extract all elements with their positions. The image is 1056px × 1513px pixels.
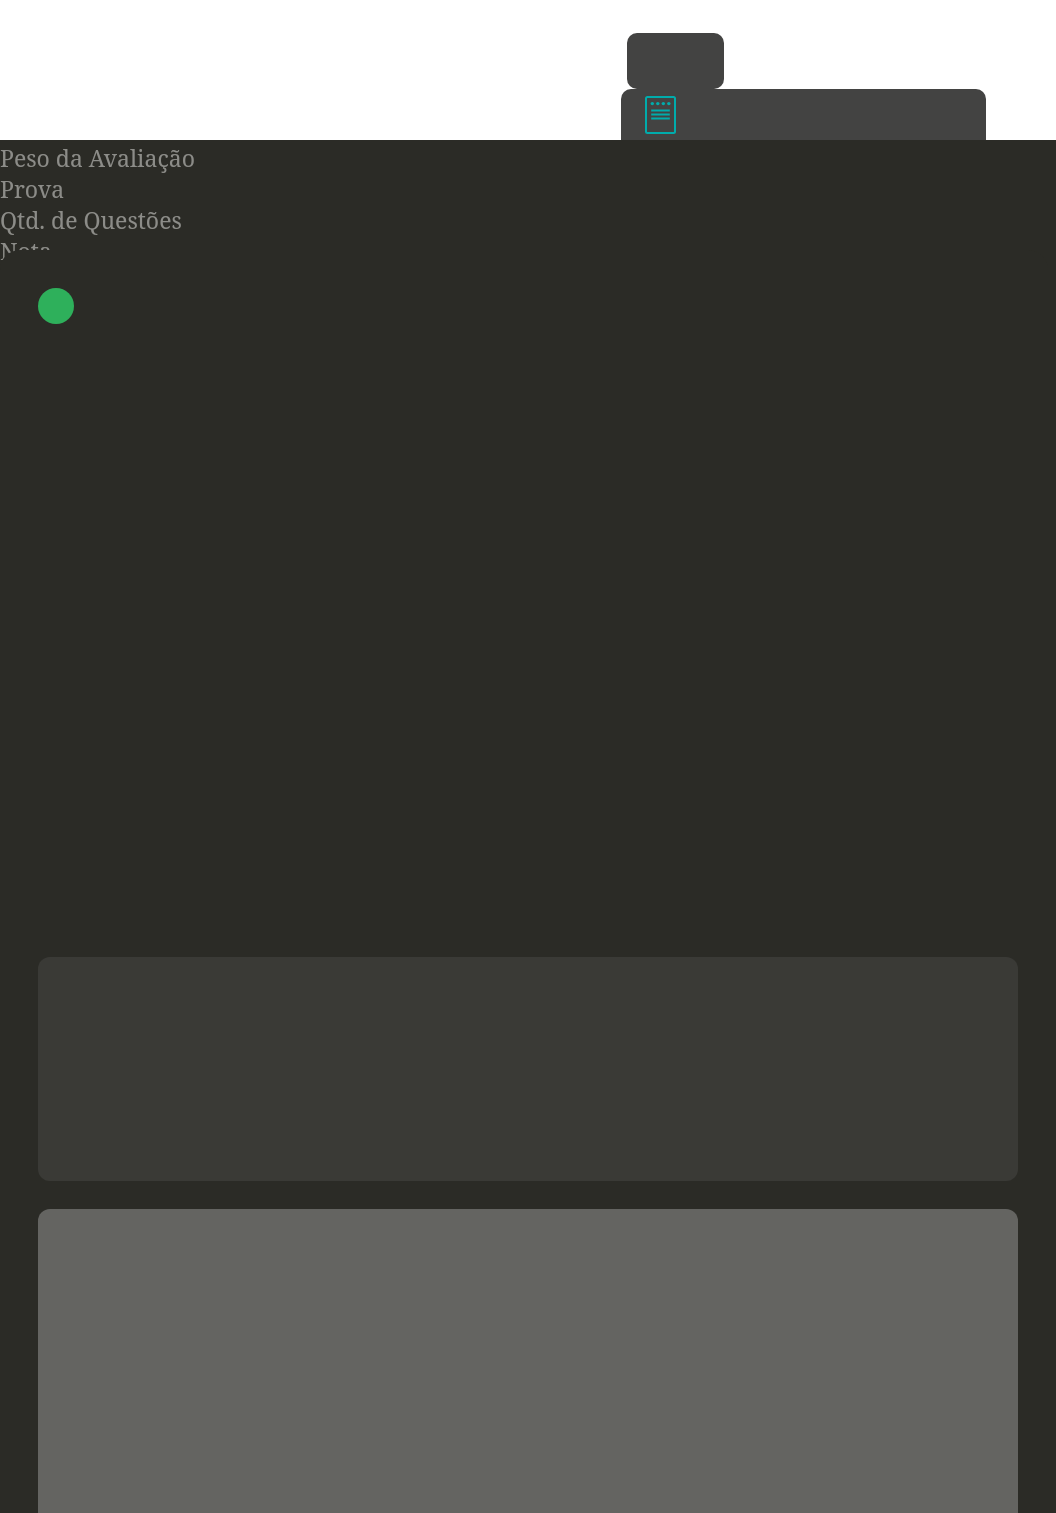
button[interactable] bbox=[627, 33, 724, 89]
staticText: Nota bbox=[0, 235, 52, 266]
button[interactable]: Status bbox=[38, 288, 74, 324]
staticText: Qtd. de Questões bbox=[0, 204, 182, 235]
button[interactable]: Lista de avaliações bbox=[621, 89, 986, 140]
button[interactable]: Lista de avaliações bbox=[645, 96, 676, 134]
staticText: Peso da Avaliação bbox=[0, 142, 195, 173]
staticText: Prova bbox=[0, 173, 65, 204]
